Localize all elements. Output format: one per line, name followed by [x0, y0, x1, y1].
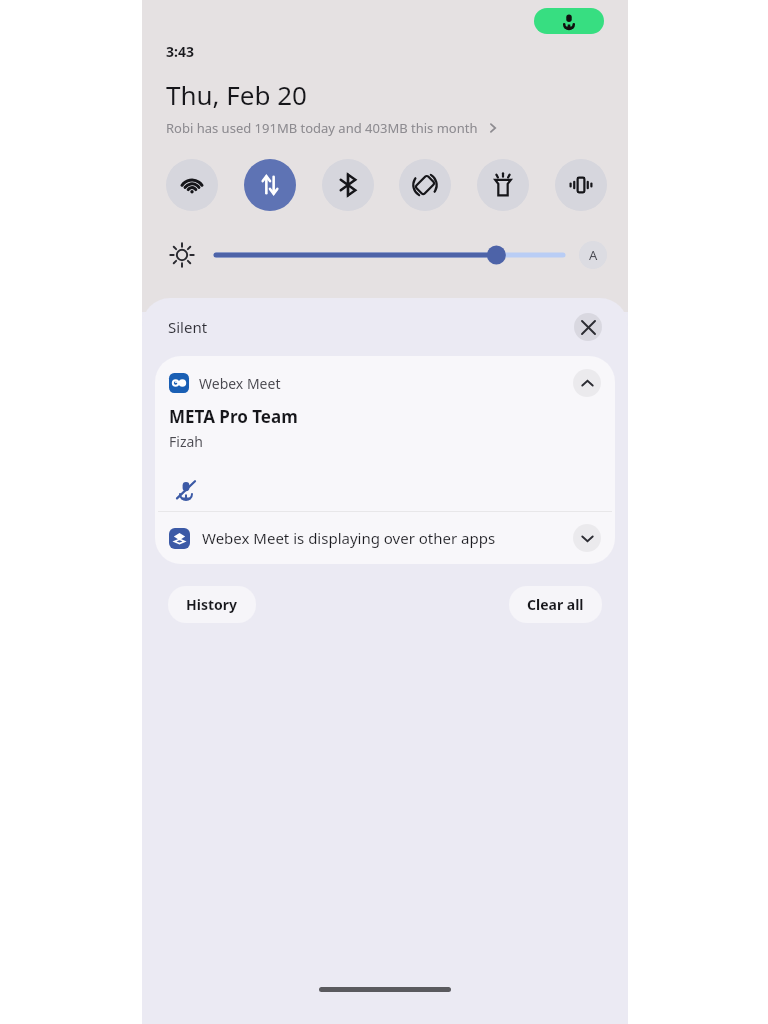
staticText: 3:43: [166, 42, 194, 61]
button[interactable]: Webex Meet is displaying over other apps: [155, 512, 615, 564]
button[interactable]: Collapse: [573, 369, 601, 397]
button[interactable]: Webex Meet: [155, 356, 615, 511]
button[interactable]: Mobile data: [244, 159, 296, 211]
button[interactable]: Bluetooth: [322, 159, 374, 211]
staticText: Silent: [168, 317, 208, 337]
staticText: A: [589, 246, 598, 264]
button[interactable]: Auto-rotate: [399, 159, 451, 211]
staticText: Webex Meet: [199, 374, 281, 393]
button[interactable]: Dismiss silent notifications: [574, 313, 602, 341]
staticText: META Pro Team: [169, 405, 298, 428]
button[interactable]: Microphone in use: [534, 8, 604, 34]
button[interactable]: Mute microphone: [169, 473, 203, 507]
button[interactable]: History: [168, 586, 256, 623]
button[interactable]: Flashlight: [477, 159, 529, 211]
button[interactable]: Clear all: [509, 586, 602, 623]
button[interactable]: A: [579, 241, 607, 269]
staticText: Clear all: [527, 595, 584, 614]
staticText: Webex Meet is displaying over other apps: [202, 528, 496, 548]
button[interactable]: Vibrate: [555, 159, 607, 211]
staticText: Fizah: [169, 432, 203, 451]
button[interactable]: Brightness: [216, 243, 563, 267]
staticText: Robi has used 191MB today and 403MB this…: [166, 119, 478, 137]
staticText: Thu, Feb 20: [166, 77, 307, 112]
staticText: History: [186, 595, 238, 614]
button[interactable]: Robi has used 191MB today and 403MB this…: [166, 119, 500, 137]
button[interactable]: Expand: [573, 524, 601, 552]
button[interactable]: Wi-Fi: [166, 159, 218, 211]
